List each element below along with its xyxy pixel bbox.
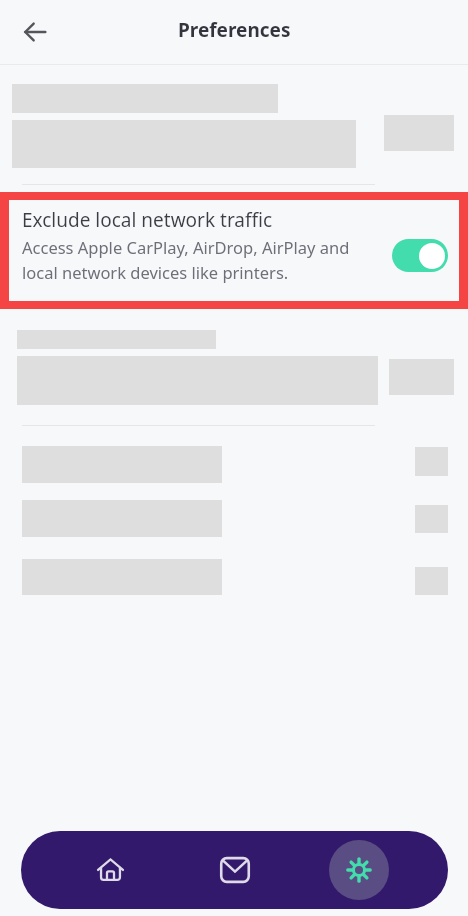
button[interactable]: Mail (208, 843, 262, 897)
staticText: Preferences (178, 17, 291, 43)
button[interactable]: Home (83, 843, 137, 897)
button[interactable]: Settings (329, 840, 389, 900)
staticText: Access Apple CarPlay, AirDrop, AirPlay a… (22, 236, 350, 283)
staticText: Exclude local network traffic (22, 207, 273, 233)
button[interactable]: Toggle exclude local network traffic (392, 239, 448, 272)
button[interactable]: Back (11, 8, 59, 56)
button[interactable]: Exclude local network traffic (9, 200, 459, 301)
